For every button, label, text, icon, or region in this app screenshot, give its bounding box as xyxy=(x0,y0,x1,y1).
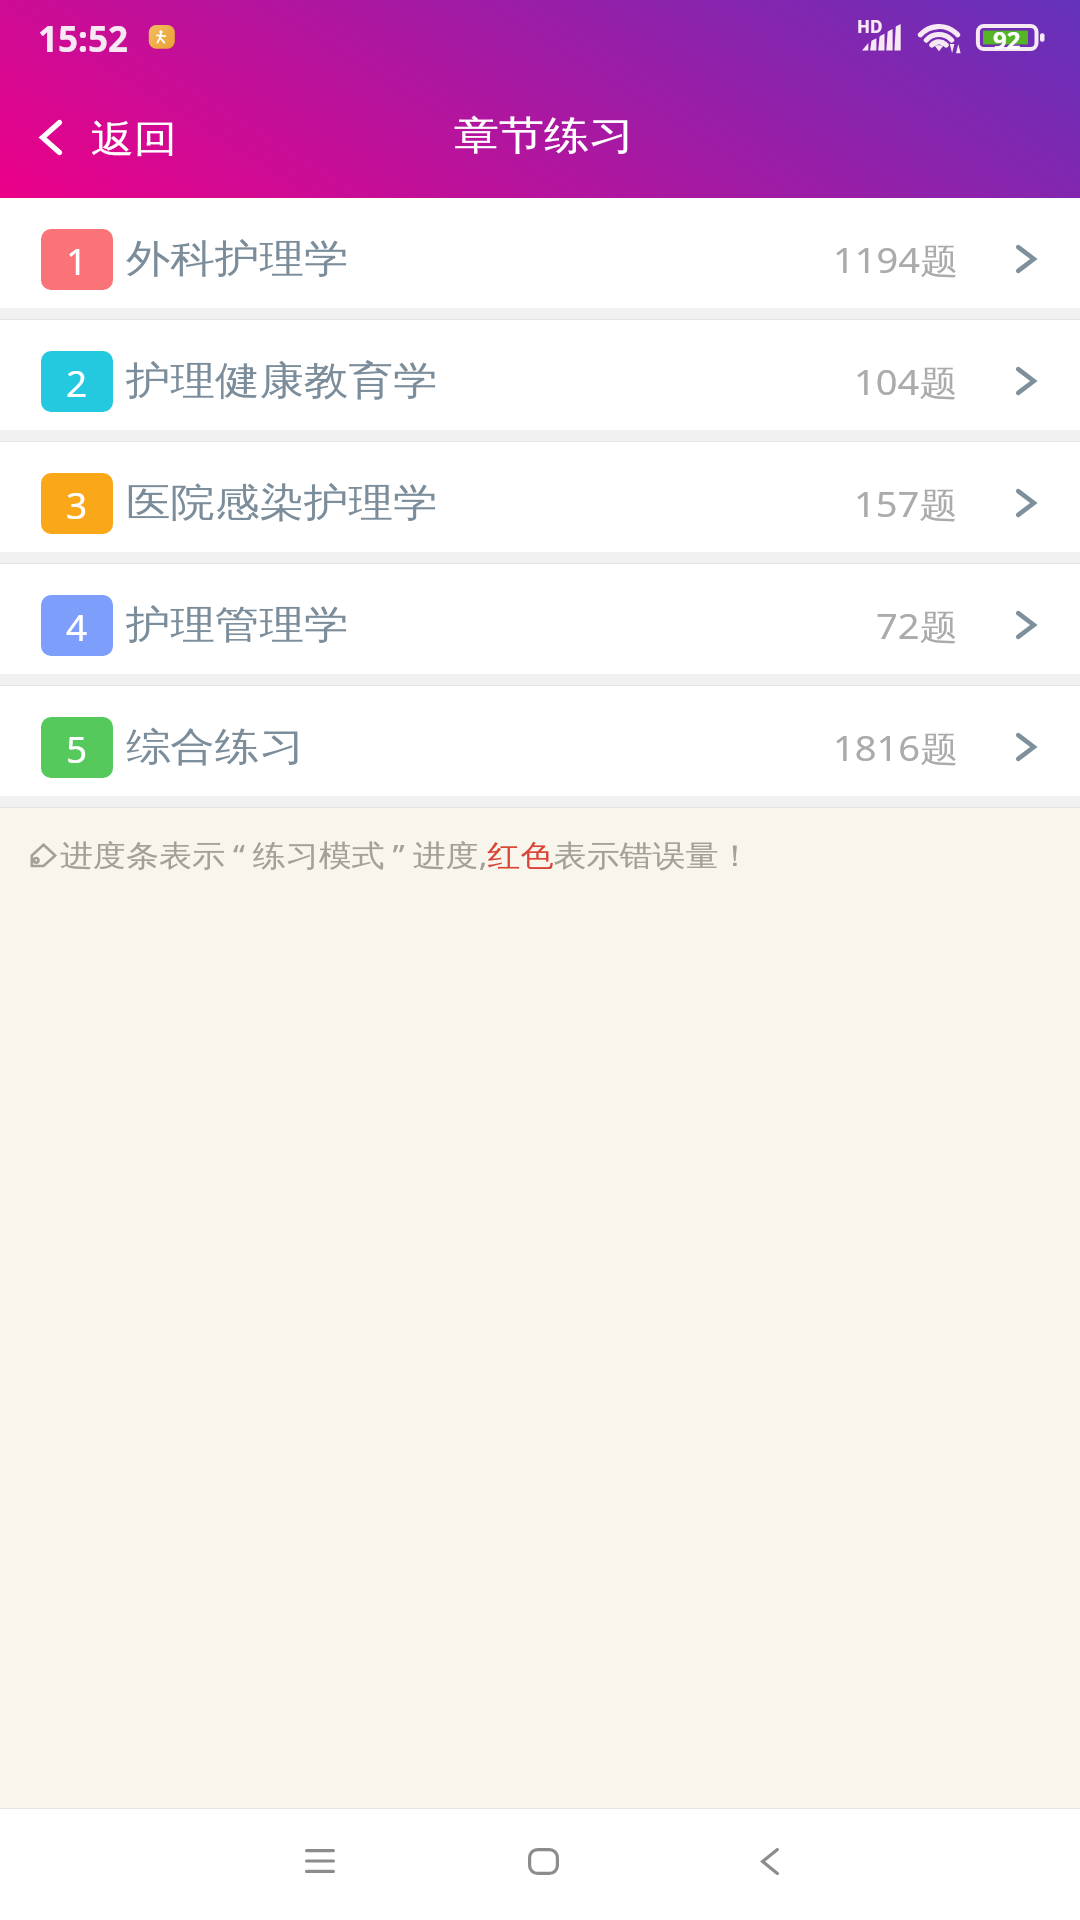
button[interactable]: 5 xyxy=(0,686,1080,808)
staticText: 返回 xyxy=(91,116,177,164)
staticText: 进度条表示“练习模式”进度,红色表示错误量！ xyxy=(60,834,752,875)
staticText: 外科护理学 xyxy=(126,234,349,284)
staticText: 157题 xyxy=(854,480,958,526)
staticText: 1194题 xyxy=(833,236,958,282)
staticText: HD xyxy=(857,15,883,38)
button[interactable]: 返回 xyxy=(0,96,197,178)
staticText: 5 xyxy=(66,723,88,773)
staticText: 92 xyxy=(993,23,1021,56)
button[interactable]: Back xyxy=(740,1805,800,1917)
button[interactable]: Recent apps xyxy=(290,1805,350,1917)
staticText: 15:52 xyxy=(38,15,128,63)
staticText: 72题 xyxy=(876,602,958,648)
staticText: 医院感染护理学 xyxy=(126,478,438,528)
staticText: 4 xyxy=(66,601,88,651)
staticText: 2 xyxy=(66,357,88,407)
button[interactable]: 1 xyxy=(0,198,1080,320)
staticText: 护理健康教育学 xyxy=(126,356,438,406)
staticText: 104题 xyxy=(854,358,958,404)
button[interactable]: 4 xyxy=(0,564,1080,686)
staticText: 3 xyxy=(66,479,88,529)
staticText: 章节练习 xyxy=(454,111,634,162)
staticText: 1816题 xyxy=(833,724,958,770)
button[interactable]: Home xyxy=(513,1805,573,1917)
button[interactable]: 3 xyxy=(0,442,1080,564)
button[interactable]: 2 xyxy=(0,320,1080,442)
staticText: 护理管理学 xyxy=(126,600,349,650)
staticText: 1 xyxy=(66,235,88,285)
staticText: 综合练习 xyxy=(126,722,304,772)
